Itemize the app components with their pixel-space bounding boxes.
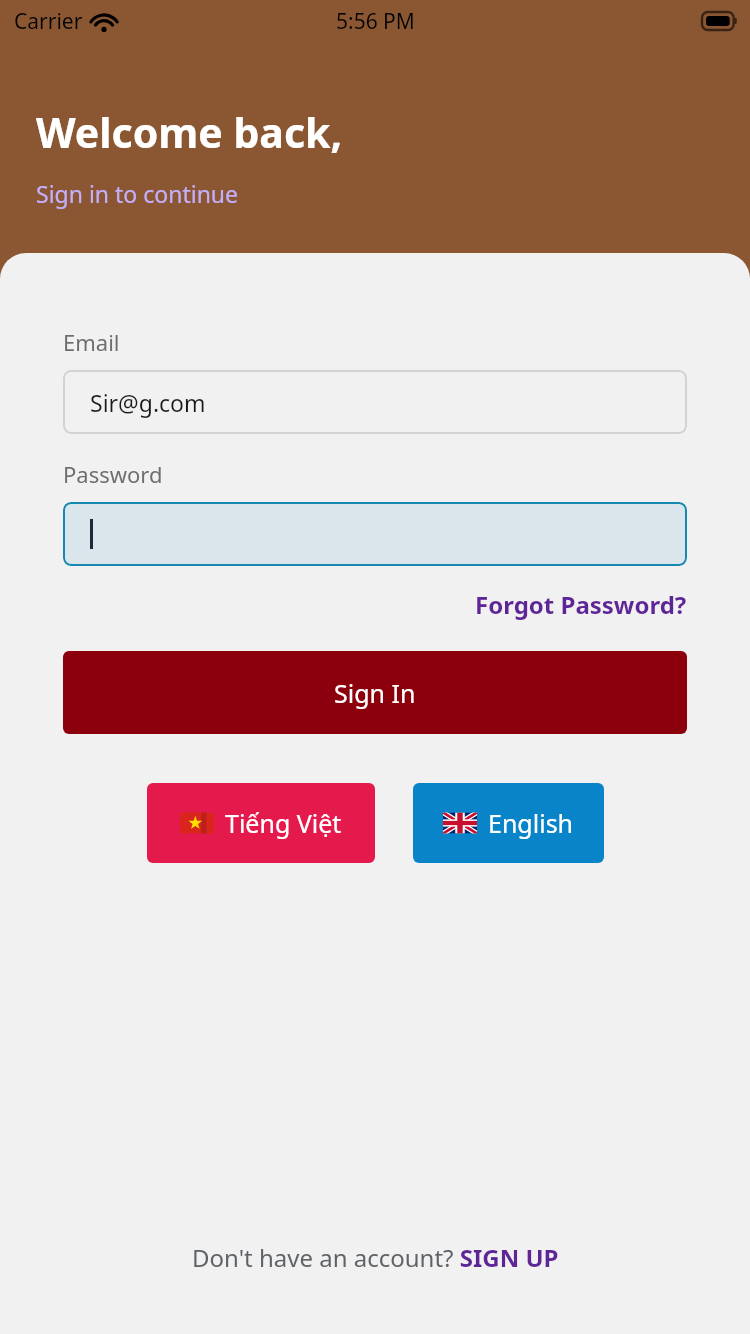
staticText: Sign in to continue	[36, 178, 239, 209]
button[interactable]: Tiếng Việt	[147, 783, 375, 863]
staticText: Forgot Password?	[475, 588, 687, 621]
button[interactable]: English	[413, 783, 604, 863]
staticText: Welcome back,	[36, 104, 343, 160]
staticText: Password	[63, 459, 163, 489]
button[interactable]: Don't have an account? SIGN UP	[192, 1241, 559, 1274]
staticText: Carrier	[14, 7, 83, 36]
staticText: Email	[63, 327, 120, 357]
staticText: Sign In	[334, 676, 416, 710]
button[interactable]: Forgot Password?	[475, 588, 687, 621]
button[interactable]: Sir@g.com	[63, 370, 687, 434]
button[interactable]: Sign In	[63, 651, 687, 734]
button[interactable]	[63, 502, 687, 566]
staticText: English	[488, 806, 574, 840]
staticText: Sir@g.com	[90, 387, 206, 418]
staticText: Tiếng Việt	[225, 806, 342, 840]
staticText: 5:56 PM	[336, 7, 415, 36]
staticText: Don't have an account? SIGN UP	[192, 1241, 559, 1274]
